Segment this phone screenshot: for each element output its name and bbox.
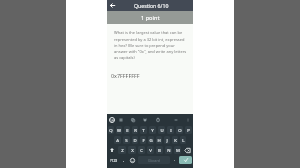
button[interactable]: Period [171, 156, 179, 164]
staticText: What is the largest value that can be re… [114, 30, 187, 60]
button[interactable]: A [114, 136, 121, 144]
button[interactable]: ?123 [107, 156, 120, 164]
button[interactable]: Back [107, 0, 118, 11]
staticText: C [140, 147, 143, 153]
staticText: B [158, 147, 161, 153]
staticText: 1 point [141, 14, 160, 22]
staticText: Gboard [148, 158, 160, 163]
button[interactable]: L [180, 136, 186, 144]
staticText: O [178, 127, 182, 133]
button[interactable]: B [156, 146, 163, 154]
staticText: V [149, 147, 152, 153]
button[interactable]: Comma [120, 156, 127, 164]
button[interactable]: Z [118, 146, 126, 154]
button[interactable]: Q [108, 126, 114, 134]
button[interactable]: Emoji [127, 156, 137, 164]
button[interactable]: Shift [107, 146, 117, 154]
button[interactable]: X [128, 146, 136, 154]
button[interactable]: R [132, 126, 138, 134]
button[interactable]: K [172, 136, 178, 144]
button[interactable]: N [165, 146, 172, 154]
button[interactable]: Y [149, 126, 156, 134]
button[interactable]: I [167, 126, 174, 134]
staticText: . [174, 157, 176, 163]
button[interactable]: More options [184, 114, 192, 125]
staticText: U [160, 127, 164, 133]
staticText: I [170, 127, 172, 133]
button[interactable]: S [123, 136, 130, 144]
staticText: E [126, 127, 129, 133]
button[interactable]: Backspace [182, 146, 193, 154]
staticText: W [117, 127, 121, 133]
button[interactable]: V [147, 146, 154, 154]
button[interactable]: Minimize keyboard [172, 114, 180, 125]
button[interactable]: G [148, 136, 154, 144]
staticText: G [149, 137, 153, 143]
button[interactable]: 1 point [107, 11, 193, 24]
staticText: 0x7FFFFFFF [111, 72, 140, 79]
staticText: R [134, 127, 137, 133]
staticText: T [142, 127, 145, 133]
staticText: Question 6/10 [134, 2, 169, 9]
staticText: Z [121, 147, 124, 153]
staticText: F [142, 137, 145, 143]
button[interactable]: Settings [117, 114, 125, 125]
button[interactable]: W [116, 126, 122, 134]
button[interactable]: F [140, 136, 146, 144]
staticText: , [123, 157, 125, 163]
staticText: Q [109, 127, 113, 133]
button[interactable]: C [138, 146, 145, 154]
staticText: P [187, 127, 190, 133]
button[interactable]: E [124, 126, 130, 134]
button[interactable]: Space [138, 156, 170, 164]
staticText: Y [151, 127, 154, 133]
staticText: X [131, 147, 134, 153]
button[interactable]: Back [107, 0, 193, 11]
staticText: D [133, 137, 137, 143]
button[interactable]: T [140, 126, 147, 134]
button[interactable]: P [185, 126, 192, 134]
staticText: S [125, 137, 128, 143]
button[interactable]: GIF [141, 114, 149, 125]
staticText: H [157, 137, 161, 143]
button[interactable]: Clipboard [154, 114, 162, 125]
staticText: K [174, 137, 177, 143]
button[interactable]: Stickers [129, 114, 137, 125]
button[interactable]: H [156, 136, 162, 144]
button[interactable]: D [132, 136, 138, 144]
button[interactable]: M [174, 146, 181, 154]
staticText: L [182, 137, 185, 143]
button[interactable]: J [164, 136, 170, 144]
button[interactable]: U [158, 126, 165, 134]
staticText: N [167, 147, 171, 153]
staticText: A [116, 137, 119, 143]
button[interactable]: Google [108, 114, 116, 125]
staticText: J [166, 137, 168, 143]
staticText: M [176, 147, 180, 153]
button[interactable]: O [176, 126, 183, 134]
staticText: ?123 [110, 158, 118, 163]
button[interactable]: Enter [179, 156, 192, 164]
